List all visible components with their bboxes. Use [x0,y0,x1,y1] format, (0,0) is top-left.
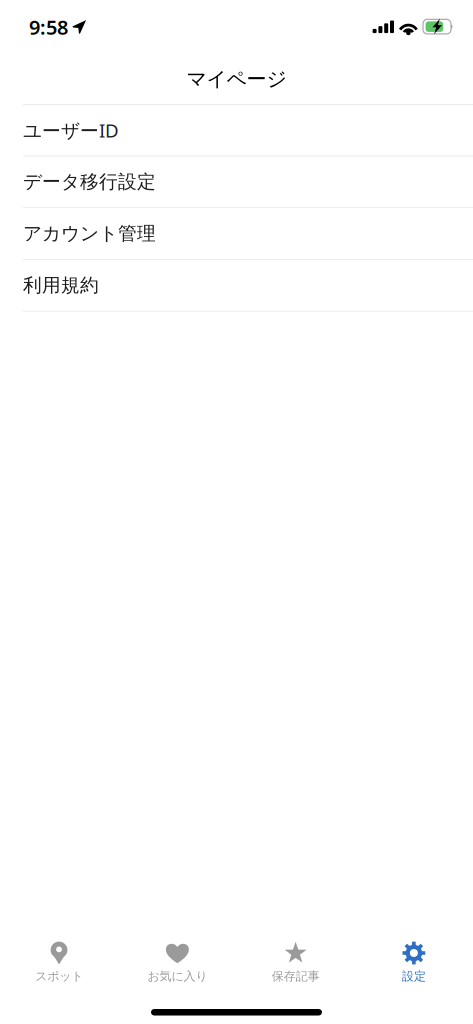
staticText: 9:58 [29,14,68,40]
button[interactable]: 利用規約 [0,260,473,311]
staticText: 設定 [402,969,426,984]
staticText: 保存記事 [272,969,320,984]
staticText: アカウント管理 [23,222,156,245]
button[interactable]: スポット [0,936,118,990]
button[interactable]: データ移行設定 [0,156,473,208]
button[interactable]: お気に入り [118,936,236,990]
staticText: マイページ [186,67,286,91]
staticText: ユーザーID [23,118,119,143]
button[interactable]: ユーザーID [0,105,473,156]
staticText: スポット [35,969,83,984]
button[interactable]: 保存記事 [236,936,355,990]
button[interactable]: アカウント管理 [0,208,473,260]
button[interactable]: 設定 [355,936,473,990]
staticText: お気に入り [147,969,207,984]
staticText: データ移行設定 [23,170,156,193]
staticText: 利用規約 [23,274,99,297]
